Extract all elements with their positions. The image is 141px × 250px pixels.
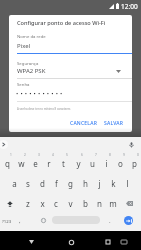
staticText: 6 — [81, 153, 83, 157]
staticText: Pixel — [17, 42, 31, 50]
staticText: Senha — [17, 81, 30, 87]
button[interactable]: q — [0, 154, 14, 172]
button[interactable]: d — [35, 174, 49, 192]
button[interactable]: w — [14, 154, 28, 172]
button[interactable]: Emoji — [38, 214, 48, 227]
button[interactable]: m — [106, 194, 120, 212]
staticText: Segurança — [17, 60, 39, 66]
staticText: 12:00 — [121, 2, 138, 11]
staticText: 3 — [38, 153, 40, 157]
button[interactable]: ?123 — [0, 214, 14, 227]
button[interactable]: j — [92, 174, 106, 192]
button[interactable]: Hide keyboard — [24, 235, 38, 249]
button[interactable]: Next field — [124, 216, 133, 225]
button[interactable]: Home — [64, 235, 78, 249]
button[interactable]: c — [49, 194, 63, 212]
staticText: v — [68, 198, 73, 209]
button[interactable]: Shift — [3, 197, 16, 210]
staticText: b — [83, 198, 88, 209]
button[interactable]: z — [21, 194, 35, 212]
button[interactable]: p — [127, 154, 141, 172]
staticText: 2 — [24, 153, 26, 157]
button[interactable]: r — [42, 154, 56, 172]
button[interactable]: . — [105, 214, 115, 227]
staticText: a — [12, 178, 17, 189]
staticText: m — [109, 198, 117, 209]
button[interactable]: t — [56, 154, 70, 172]
staticText: ?123 — [2, 218, 12, 224]
staticText: 8 — [109, 153, 111, 157]
staticText: . — [109, 217, 111, 225]
button[interactable]: SALVAR — [101, 116, 127, 130]
staticText: f — [55, 178, 58, 189]
staticText: o — [118, 158, 123, 169]
staticText: 7 — [95, 153, 97, 157]
button[interactable]: u — [85, 154, 99, 172]
button[interactable]: b — [78, 194, 92, 212]
button[interactable]: x — [35, 194, 49, 212]
button[interactable]: i — [99, 154, 113, 172]
staticText: c — [54, 198, 58, 209]
staticText: l — [126, 178, 129, 189]
button[interactable]: l — [120, 174, 134, 192]
staticText: p — [132, 158, 137, 169]
staticText: u — [90, 158, 95, 169]
staticText: SALVAR — [104, 120, 124, 126]
button[interactable]: CANCELAR — [67, 116, 100, 130]
staticText: d — [40, 178, 45, 189]
staticText: A senha deve ter no mínimo 8 caracteres — [17, 107, 71, 111]
staticText: n — [97, 198, 102, 209]
button[interactable]: h — [78, 174, 92, 192]
staticText: y — [76, 158, 81, 169]
staticText: s — [26, 178, 30, 189]
button[interactable]: More suggestions — [0, 140, 8, 149]
button[interactable]: Recent apps — [101, 235, 115, 249]
staticText: k — [111, 178, 116, 189]
button[interactable]: e — [28, 154, 42, 172]
staticText: ••••••••••• — [16, 90, 65, 98]
staticText: z — [26, 198, 30, 209]
button[interactable]: f — [49, 174, 63, 192]
staticText: Configurar ponto de acesso Wi-Fi — [17, 19, 106, 27]
staticText: g — [68, 178, 73, 189]
button[interactable]: g — [63, 174, 77, 192]
staticText: 5 — [66, 153, 68, 157]
staticText: x — [40, 198, 45, 209]
staticText: 9 — [123, 153, 125, 157]
button[interactable]: Backspace — [123, 197, 136, 210]
button[interactable]: k — [106, 174, 120, 192]
button[interactable]: n — [92, 194, 106, 212]
button[interactable]: o — [113, 154, 127, 172]
staticText: w — [18, 158, 25, 169]
staticText: r — [47, 158, 51, 169]
staticText: 1 — [10, 153, 12, 157]
staticText: q — [5, 158, 10, 169]
button[interactable]: v — [63, 194, 77, 212]
staticText: 4 — [52, 153, 54, 157]
staticText: CANCELAR — [70, 120, 97, 126]
button[interactable]: Voice input — [127, 140, 136, 149]
button[interactable]: Switch keyboard — [117, 235, 131, 249]
staticText: , — [19, 217, 21, 225]
staticText: WPA2 PSK — [17, 67, 46, 75]
button[interactable]: y — [71, 154, 85, 172]
button[interactable]: s — [21, 174, 35, 192]
button[interactable]: a — [7, 174, 21, 192]
button[interactable]: , — [15, 214, 25, 227]
staticText: t — [62, 158, 65, 169]
staticText: j — [98, 178, 101, 189]
staticText: Nome da rede — [17, 33, 46, 39]
staticText: i — [105, 158, 108, 169]
staticText: e — [33, 158, 38, 169]
staticText: 0 — [137, 153, 139, 157]
staticText: h — [83, 178, 88, 189]
